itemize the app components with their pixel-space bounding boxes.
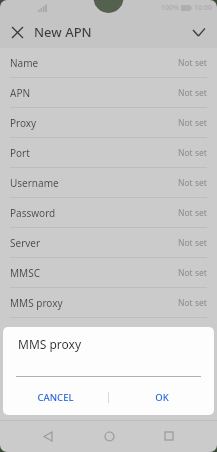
staticText: MMS proxy <box>18 336 82 352</box>
staticText: 100% <box>161 3 179 13</box>
staticText: Not set <box>178 237 207 249</box>
staticText: MMS proxy <box>10 296 63 310</box>
staticText: Not set <box>178 147 207 159</box>
staticText: Username <box>10 176 59 190</box>
button[interactable]: Password <box>0 198 217 227</box>
button[interactable]: Port <box>0 138 217 167</box>
staticText: Not set <box>178 87 207 99</box>
staticText: MMS port <box>10 326 57 340</box>
button[interactable]: Server <box>0 228 217 257</box>
staticText: Not set <box>178 117 207 129</box>
button[interactable]: APN <box>0 78 217 107</box>
button[interactable]: Home <box>96 423 122 449</box>
button[interactable]: Username <box>0 168 217 197</box>
staticText: Password <box>10 206 56 220</box>
button[interactable]: MMSC <box>0 258 217 287</box>
button[interactable]: Save <box>189 22 209 42</box>
staticText: CANCEL <box>37 391 74 404</box>
button[interactable]: OK <box>109 385 214 409</box>
button[interactable]: MMS protocol <box>0 348 217 377</box>
staticText: Proxy <box>10 116 37 130</box>
staticText: Not set <box>178 207 207 219</box>
staticText: Name <box>10 56 39 70</box>
staticText: Not set <box>178 297 207 309</box>
button[interactable]: Recent apps <box>156 423 182 449</box>
button[interactable]: Name <box>0 48 217 77</box>
button[interactable]: CANCEL <box>3 385 108 409</box>
staticText: APN <box>10 86 31 100</box>
staticText: Server <box>10 236 41 250</box>
staticText: New APN <box>34 23 92 41</box>
staticText: Not set <box>178 57 207 69</box>
staticText: 10:00 <box>194 3 212 13</box>
staticText: OK <box>155 391 169 404</box>
staticText: MMSC <box>10 266 40 280</box>
button[interactable]: Back <box>35 423 61 449</box>
button[interactable]: MMS proxy <box>0 288 217 317</box>
staticText: Port <box>10 146 30 160</box>
button[interactable]: MMS port <box>0 318 217 347</box>
button[interactable]: Close <box>7 22 27 42</box>
staticText: Not set <box>178 177 207 189</box>
staticText: Not set <box>178 267 207 279</box>
button[interactable]: Proxy <box>0 108 217 137</box>
